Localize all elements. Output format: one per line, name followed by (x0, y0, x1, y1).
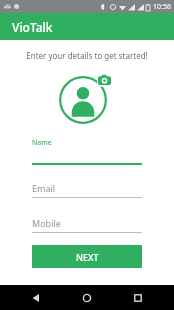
staticText: 10:56 (153, 2, 171, 12)
button[interactable]: Change profile photo (59, 72, 115, 128)
button[interactable]: Email (32, 182, 142, 198)
staticText: Name (32, 138, 52, 148)
button[interactable]: Home (72, 285, 102, 310)
staticText: Email (32, 182, 56, 194)
staticText: VioTalk (12, 19, 53, 35)
staticText: Enter your details to get started! (26, 50, 148, 61)
button[interactable]: Back (21, 285, 51, 310)
button[interactable]: Name (32, 138, 142, 165)
button[interactable]: NEXT (32, 245, 142, 268)
staticText: NEXT (76, 251, 99, 263)
button[interactable]: Mobile (32, 217, 142, 233)
button[interactable]: Recent apps (123, 285, 153, 310)
staticText: Mobile (32, 217, 61, 229)
